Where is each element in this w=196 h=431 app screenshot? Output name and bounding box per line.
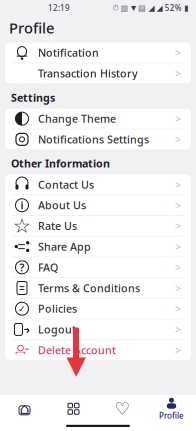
staticText: ✓	[18, 303, 26, 314]
staticText: Profile	[159, 410, 184, 421]
staticText: Terms & Conditions	[38, 281, 140, 295]
button[interactable]: Delete Account	[5, 340, 191, 360]
staticText: Notification	[38, 45, 99, 60]
staticText: ?	[19, 260, 24, 274]
staticText: Policies	[38, 302, 77, 316]
staticText: Delete Account	[38, 343, 116, 357]
staticText: Rate Us	[38, 219, 77, 233]
button[interactable]: Favorites	[98, 396, 147, 422]
staticText: >	[175, 260, 181, 274]
staticText: FAQ	[38, 260, 58, 274]
staticText: ♡	[114, 399, 130, 419]
staticText: Other Information	[11, 156, 110, 170]
button[interactable]: ?	[5, 257, 191, 278]
staticText: >	[175, 66, 181, 80]
button[interactable]: Profile	[147, 396, 196, 422]
staticText: i	[20, 198, 23, 212]
staticText: >	[175, 281, 181, 295]
staticText: >	[175, 198, 181, 212]
staticText: ◢	[157, 3, 163, 13]
button[interactable]: Categories	[49, 396, 98, 422]
staticText: ▥	[121, 3, 129, 13]
staticText: >	[175, 302, 181, 316]
staticText: >	[175, 343, 181, 357]
staticText: ◢	[148, 3, 154, 13]
button[interactable]: ☆	[5, 216, 191, 237]
button[interactable]: $	[5, 63, 191, 83]
button[interactable]: Terms & Conditions	[5, 278, 191, 299]
button[interactable]: ✓	[5, 299, 191, 319]
staticText: >	[175, 239, 181, 254]
staticText: Contact Us	[38, 177, 94, 192]
button[interactable]: Home	[0, 396, 49, 422]
staticText: >	[175, 177, 181, 192]
staticText: Share App	[38, 239, 91, 254]
button[interactable]: Notifications Settings	[5, 129, 191, 149]
button[interactable]: ›	[5, 319, 191, 340]
staticText: Logout	[38, 322, 76, 336]
button[interactable]: Share App	[5, 237, 191, 257]
staticText: About Us	[38, 198, 86, 212]
staticText: Change Theme	[38, 112, 116, 126]
button[interactable]: Contact Us	[5, 174, 191, 195]
button[interactable]: Notification	[5, 43, 191, 63]
staticText: >	[175, 322, 181, 336]
staticText: >	[175, 132, 181, 146]
staticText: >	[175, 112, 181, 126]
staticText: Transaction History	[38, 66, 138, 80]
staticText: >	[175, 45, 181, 60]
staticText: ▮	[184, 3, 188, 13]
staticText: Notifications Settings	[38, 132, 149, 146]
staticText: ▤	[138, 3, 146, 13]
button[interactable]: i	[5, 195, 191, 216]
staticText: 52%	[165, 3, 182, 13]
staticText: ›	[26, 322, 30, 336]
staticText: ▼	[66, 351, 85, 379]
staticText: ▼	[131, 4, 136, 12]
staticText: Profile	[9, 18, 54, 37]
staticText: ⏱	[113, 4, 119, 12]
staticText: >	[175, 219, 181, 233]
staticText: ⌂	[19, 400, 29, 418]
staticText: 12:19	[48, 3, 70, 13]
staticText: Settings	[11, 90, 55, 105]
button[interactable]: Change Theme	[5, 109, 191, 129]
staticText: ☆	[13, 215, 31, 237]
